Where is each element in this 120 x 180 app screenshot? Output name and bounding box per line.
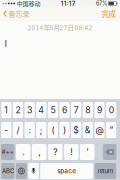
button[interactable]: ( bbox=[48, 122, 58, 138]
button[interactable]: Dictation bbox=[28, 163, 39, 179]
button[interactable]: 9 bbox=[94, 102, 105, 118]
staticText: ’ bbox=[86, 147, 88, 157]
button[interactable]: 0 bbox=[106, 102, 116, 118]
button[interactable]: ) bbox=[59, 122, 70, 138]
button[interactable]: return bbox=[95, 163, 116, 179]
staticText: “ bbox=[109, 125, 113, 135]
staticText: 5 bbox=[50, 105, 55, 115]
staticText: , bbox=[38, 147, 40, 157]
staticText: 2 bbox=[15, 105, 20, 115]
staticText: 67% bbox=[96, 0, 107, 7]
staticText: / bbox=[16, 125, 19, 135]
staticText: return bbox=[98, 167, 113, 175]
button[interactable]: - bbox=[1, 122, 11, 138]
button[interactable]: 8 bbox=[83, 102, 93, 118]
staticText: ( bbox=[51, 125, 54, 135]
staticText: #+= bbox=[2, 148, 14, 156]
button[interactable]: : bbox=[24, 122, 35, 138]
staticText: 备忘录 bbox=[8, 8, 29, 19]
staticText: ; bbox=[40, 125, 43, 135]
button[interactable]: 4 bbox=[36, 102, 46, 118]
staticText: space bbox=[57, 167, 76, 175]
staticText: 7 bbox=[74, 105, 79, 115]
button[interactable]: ! bbox=[64, 144, 78, 160]
staticText: 3 bbox=[27, 105, 32, 115]
staticText: ! bbox=[70, 147, 72, 157]
staticText: & bbox=[85, 125, 91, 135]
staticText: 2014年5月27日 08:42 bbox=[27, 23, 92, 32]
staticText: 11:17 bbox=[61, 0, 76, 7]
staticText: 1 bbox=[4, 105, 8, 115]
staticText: 6 bbox=[62, 105, 67, 115]
button[interactable]: . bbox=[16, 144, 30, 160]
button[interactable]: ABC bbox=[1, 163, 14, 179]
staticText: 9 bbox=[97, 105, 102, 115]
staticText: ABC bbox=[2, 167, 14, 175]
button[interactable]: 完成 bbox=[98, 7, 120, 20]
staticText: : bbox=[29, 125, 31, 135]
staticText: - bbox=[4, 125, 8, 135]
button[interactable]: space bbox=[40, 163, 93, 179]
button[interactable]: , bbox=[32, 144, 46, 160]
button[interactable]: ’ bbox=[80, 144, 94, 160]
staticText: ) bbox=[63, 125, 66, 135]
staticText: 中国移动 bbox=[17, 0, 41, 8]
staticText: 完成 bbox=[101, 8, 115, 19]
button[interactable]: Next keyboard bbox=[16, 163, 27, 179]
staticText: . bbox=[22, 147, 24, 157]
button[interactable]: / bbox=[13, 122, 23, 138]
button[interactable]: 1 bbox=[1, 102, 11, 118]
button[interactable]: $ bbox=[71, 122, 81, 138]
button[interactable]: 7 bbox=[71, 102, 81, 118]
staticText: 0 bbox=[109, 105, 114, 115]
button[interactable]: 3 bbox=[24, 102, 35, 118]
button[interactable]: ? bbox=[48, 144, 62, 160]
staticText: $ bbox=[73, 125, 79, 135]
button[interactable]: & bbox=[83, 122, 93, 138]
button[interactable]: ; bbox=[36, 122, 46, 138]
button[interactable]: 2 bbox=[13, 102, 23, 118]
staticText: ? bbox=[53, 147, 57, 157]
staticText: 4 bbox=[38, 105, 44, 115]
button[interactable]: @ bbox=[94, 122, 105, 138]
button[interactable]: #+= bbox=[1, 144, 14, 160]
button[interactable]: 备忘录 bbox=[0, 7, 32, 20]
button[interactable]: 5 bbox=[48, 102, 58, 118]
staticText: @ bbox=[95, 125, 103, 135]
button[interactable]: 6 bbox=[59, 102, 70, 118]
button[interactable]: Delete bbox=[103, 144, 116, 160]
button[interactable]: “ bbox=[106, 122, 116, 138]
staticText: 8 bbox=[85, 105, 90, 115]
